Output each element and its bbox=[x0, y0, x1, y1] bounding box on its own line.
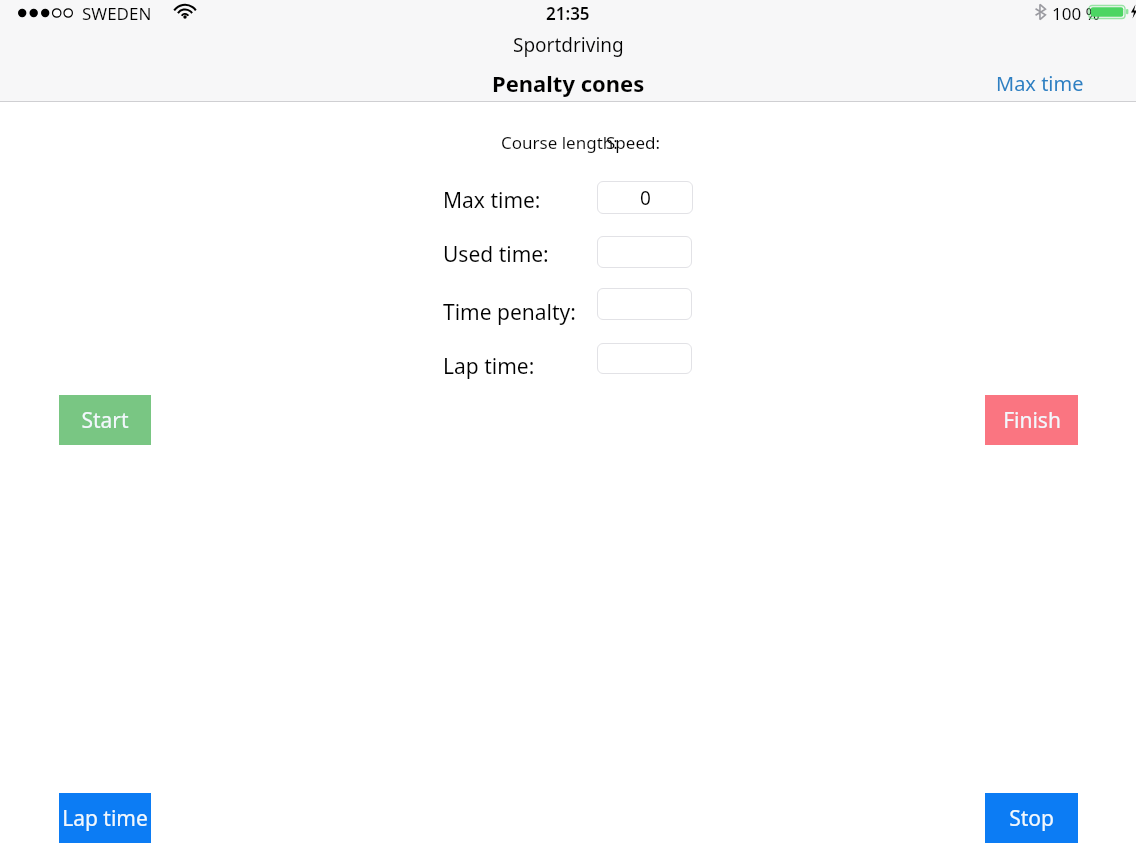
button[interactable]: Finish bbox=[985, 395, 1078, 445]
button[interactable] bbox=[597, 236, 692, 268]
button[interactable]: 0 bbox=[597, 181, 693, 214]
button[interactable]: Start bbox=[59, 395, 151, 445]
staticText: 21:35 bbox=[546, 2, 590, 25]
staticText: Max time bbox=[996, 70, 1084, 97]
staticText: Finish bbox=[1003, 406, 1061, 435]
staticText: Sportdriving bbox=[513, 32, 624, 58]
staticText: Time penalty: bbox=[443, 298, 576, 327]
button[interactable]: Stop bbox=[985, 793, 1078, 843]
staticText: Course length: bbox=[501, 131, 618, 154]
button[interactable]: Lap time bbox=[59, 793, 151, 843]
staticText: Lap time: bbox=[443, 352, 535, 381]
button[interactable]: Max time bbox=[990, 68, 1090, 99]
staticText: Stop bbox=[1009, 804, 1054, 833]
staticText: Lap time bbox=[62, 804, 148, 833]
staticText: 0 bbox=[640, 185, 651, 211]
staticText: Max time: bbox=[443, 186, 541, 215]
staticText: Penalty cones bbox=[492, 68, 645, 98]
staticText: Start bbox=[81, 406, 129, 435]
staticText: Speed: bbox=[606, 131, 660, 154]
staticText: 100 % bbox=[1052, 2, 1100, 25]
staticText: Used time: bbox=[443, 240, 549, 269]
staticText: SWEDEN bbox=[82, 2, 152, 25]
button[interactable] bbox=[597, 288, 692, 320]
button[interactable] bbox=[597, 343, 692, 374]
